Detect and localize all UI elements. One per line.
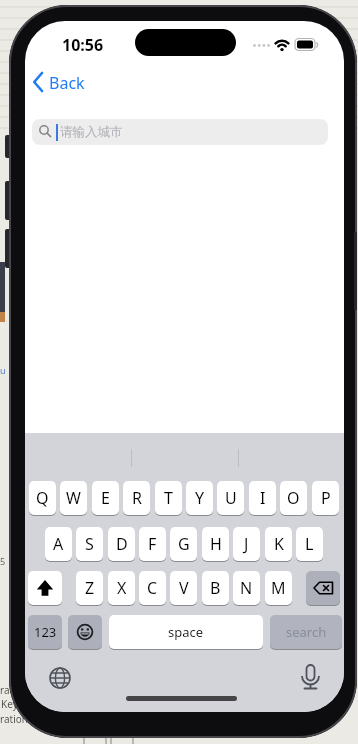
button[interactable] bbox=[306, 571, 340, 605]
staticText: Back bbox=[49, 72, 85, 92]
button[interactable]: O bbox=[280, 481, 307, 515]
button[interactable]: M bbox=[265, 571, 292, 605]
button[interactable]: Q bbox=[29, 481, 56, 515]
button[interactable]: H bbox=[202, 527, 229, 561]
staticText: A bbox=[53, 533, 64, 555]
button[interactable]: Z bbox=[76, 571, 103, 605]
button[interactable]: Y bbox=[186, 481, 213, 515]
button[interactable]: search bbox=[270, 615, 342, 649]
staticText: R bbox=[132, 487, 142, 509]
staticText: 请输入城市 bbox=[60, 124, 123, 140]
button[interactable]: X bbox=[108, 571, 135, 605]
staticText: Keys bbox=[1, 697, 23, 711]
staticText: 10:56 bbox=[62, 34, 104, 52]
button[interactable]: S bbox=[76, 527, 103, 561]
button[interactable]: T bbox=[155, 481, 182, 515]
staticText: V bbox=[179, 577, 189, 599]
staticText: Y bbox=[195, 487, 205, 509]
staticText: space bbox=[168, 623, 204, 641]
button[interactable] bbox=[68, 615, 102, 649]
button[interactable]: space bbox=[109, 615, 263, 649]
staticText: Q bbox=[36, 487, 49, 509]
staticText: G bbox=[178, 533, 190, 555]
staticText: O bbox=[287, 487, 300, 509]
button[interactable]: G bbox=[170, 527, 197, 561]
staticText: I bbox=[260, 487, 266, 509]
button[interactable]: P bbox=[312, 481, 339, 515]
staticText: M bbox=[271, 577, 286, 599]
button[interactable]: K bbox=[265, 527, 292, 561]
button[interactable]: W bbox=[60, 481, 87, 515]
button[interactable]: B bbox=[202, 571, 229, 605]
staticText: Z bbox=[85, 577, 95, 599]
button[interactable]: I bbox=[249, 481, 276, 515]
button[interactable] bbox=[49, 667, 71, 689]
staticText: L bbox=[305, 533, 314, 555]
button[interactable]: L bbox=[296, 527, 323, 561]
staticText: rations bbox=[0, 712, 33, 726]
staticText: U bbox=[225, 487, 237, 509]
button[interactable] bbox=[299, 663, 322, 691]
button[interactable]: F bbox=[139, 527, 166, 561]
staticText: rat bbox=[0, 683, 14, 697]
staticText: S bbox=[85, 533, 94, 555]
button[interactable]: 123 bbox=[28, 615, 62, 649]
staticText: u bbox=[0, 364, 6, 376]
staticText: 5 bbox=[0, 555, 6, 567]
staticText: C bbox=[147, 577, 158, 599]
staticText: search bbox=[286, 623, 327, 641]
staticText: E bbox=[101, 487, 110, 509]
staticText: N bbox=[240, 577, 253, 599]
button[interactable]: N bbox=[233, 571, 260, 605]
button[interactable]: Back bbox=[33, 72, 85, 92]
button[interactable]: U bbox=[217, 481, 244, 515]
button[interactable]: 请输入城市 bbox=[32, 119, 328, 145]
staticText: F bbox=[148, 533, 157, 555]
button[interactable]: J bbox=[233, 527, 260, 561]
staticText: J bbox=[244, 533, 249, 555]
button[interactable]: R bbox=[123, 481, 150, 515]
staticText: 123 bbox=[34, 623, 57, 641]
staticText: X bbox=[117, 577, 127, 599]
button[interactable]: D bbox=[108, 527, 135, 561]
staticText: W bbox=[66, 487, 81, 509]
button[interactable]: A bbox=[45, 527, 72, 561]
staticText: D bbox=[116, 533, 128, 555]
button[interactable] bbox=[28, 571, 62, 605]
staticText: K bbox=[274, 533, 284, 555]
staticText: H bbox=[210, 533, 222, 555]
button[interactable]: V bbox=[170, 571, 197, 605]
button[interactable]: E bbox=[92, 481, 119, 515]
staticText: B bbox=[210, 577, 221, 599]
button[interactable]: C bbox=[139, 571, 166, 605]
staticText: P bbox=[321, 487, 331, 509]
staticText: T bbox=[164, 487, 173, 509]
